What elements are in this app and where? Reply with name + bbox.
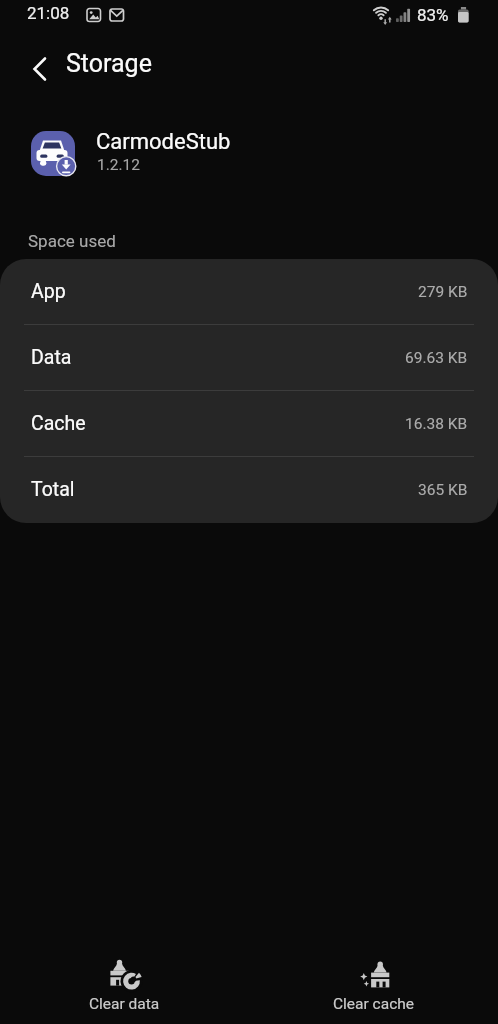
- staticText: Total: [31, 478, 75, 501]
- staticText: 83%: [417, 5, 449, 25]
- staticText: 279 KB: [418, 283, 468, 301]
- staticText: App: [31, 280, 66, 303]
- staticText: 21:08: [27, 3, 70, 23]
- staticText: Data: [31, 346, 72, 369]
- staticText: Cache: [31, 412, 86, 435]
- staticText: Storage: [66, 49, 152, 78]
- staticText: Space used: [28, 231, 116, 251]
- button[interactable]: Data: [0, 325, 498, 390]
- button[interactable]: [18, 52, 62, 86]
- staticText: 1.2.12: [97, 156, 141, 174]
- button[interactable]: Clear cache: [249, 948, 498, 1024]
- staticText: 16.38 KB: [405, 415, 468, 433]
- staticText: CarmodeStub: [96, 129, 231, 155]
- staticText: 365 KB: [418, 481, 468, 499]
- staticText: Clear data: [89, 995, 160, 1013]
- button[interactable]: App: [0, 259, 498, 324]
- staticText: Clear cache: [333, 995, 415, 1013]
- staticText: 69.63 KB: [405, 349, 468, 367]
- button[interactable]: Total: [0, 457, 498, 522]
- button[interactable]: Cache: [0, 391, 498, 456]
- button[interactable]: Clear data: [0, 948, 249, 1024]
